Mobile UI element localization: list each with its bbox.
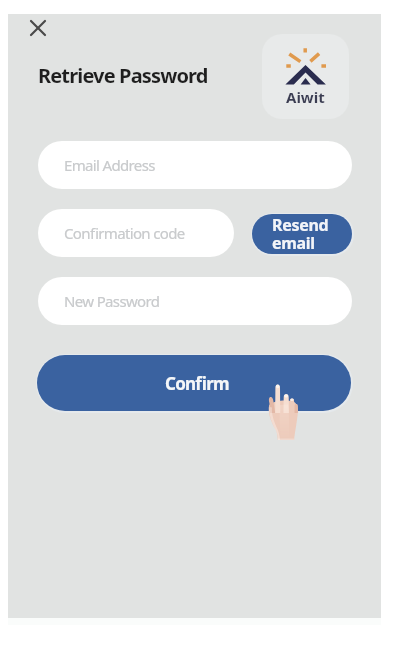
staticText: Confirm xyxy=(165,372,229,395)
button[interactable]: New Password xyxy=(38,277,352,325)
staticText: New Password xyxy=(64,291,160,311)
button[interactable]: Email Address xyxy=(38,141,352,189)
button[interactable]: Confirmation code xyxy=(38,209,234,257)
staticText: Confirmation code xyxy=(64,223,185,243)
staticText: Aiwit xyxy=(286,87,325,107)
staticText: Retrieve Password xyxy=(38,62,208,89)
button[interactable]: Confirm xyxy=(37,355,351,411)
button[interactable]: Close xyxy=(22,12,54,44)
staticText: Resend email xyxy=(272,214,329,254)
staticText: Email Address xyxy=(64,155,155,175)
button[interactable]: Aiwit xyxy=(262,34,349,119)
button[interactable]: Resend email xyxy=(252,214,352,254)
